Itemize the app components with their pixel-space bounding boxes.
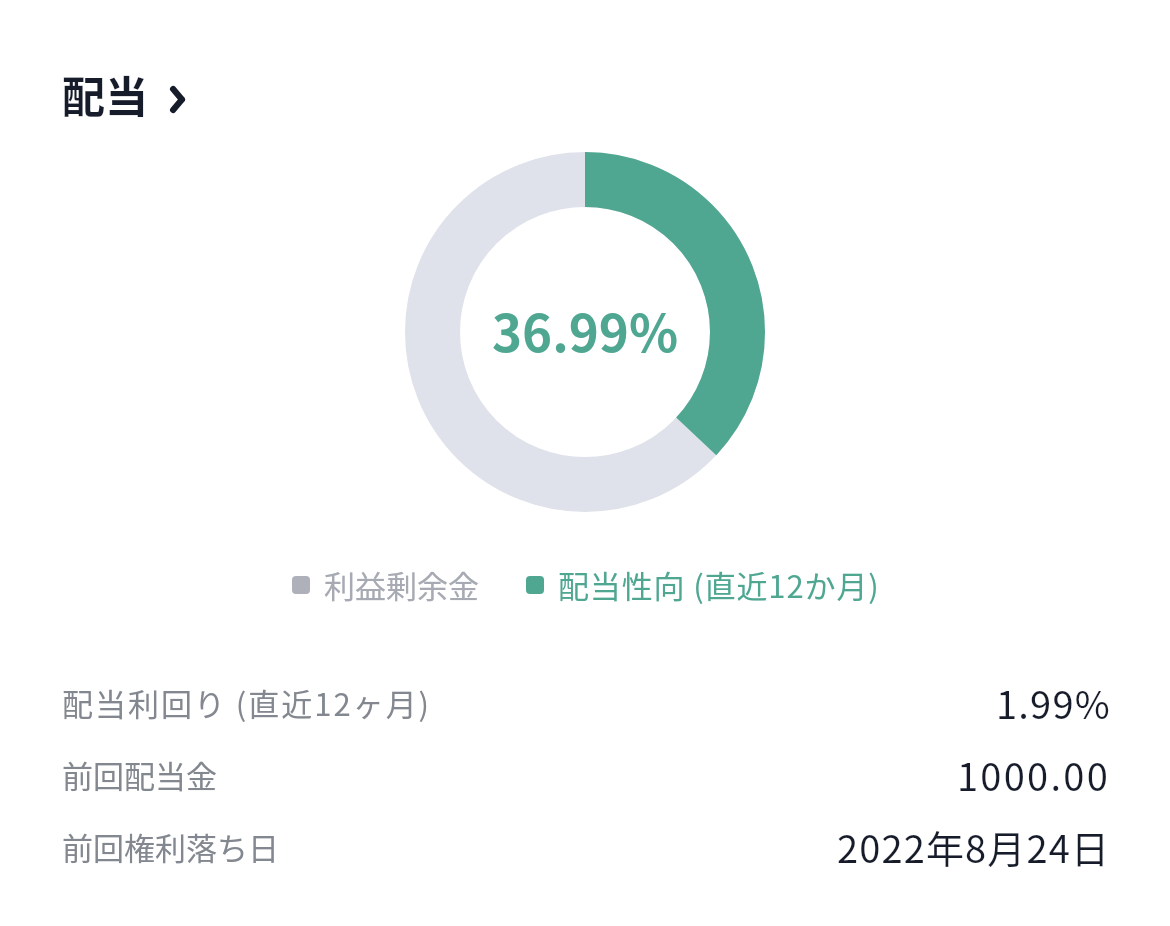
button[interactable]: 前回権利落ち日 [0,810,1170,882]
staticText: 利益剰余金 [324,562,479,607]
staticText: 前回権利落ち日 [62,824,279,869]
staticText: 1.99% [996,675,1111,730]
staticText: 36.99% [492,293,679,367]
other: 配当の詳細を開く [170,86,185,113]
button[interactable]: 前回配当金 [0,738,1170,810]
button[interactable]: 利益剰余金 [292,562,479,607]
button[interactable]: 配当性向 (直近12か月) [526,562,880,607]
staticText: 1000.00 [957,747,1111,802]
button[interactable]: 配当 [62,63,193,125]
button[interactable]: 配当利回り (直近12ヶ月) [0,666,1170,738]
staticText: 配当性向 (直近12か月) [558,562,880,607]
staticText: 配当 [62,63,148,125]
staticText: 配当利回り (直近12ヶ月) [62,680,432,725]
staticText: 2022年8月24日 [837,819,1111,874]
staticText: 前回配当金 [62,752,217,797]
